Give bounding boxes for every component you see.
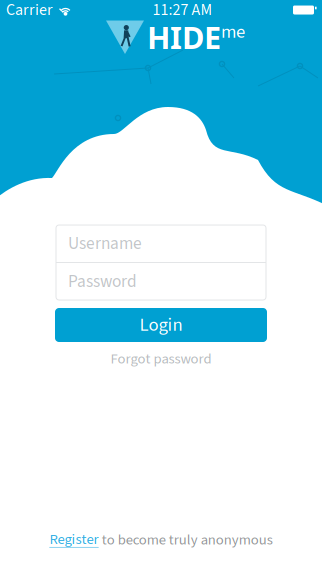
staticText: to become truly anonymous [99,530,273,550]
button[interactable]: Username [56,225,266,262]
staticText: me [221,19,245,45]
button[interactable]: Password [56,263,266,300]
button[interactable]: Register [49,529,99,551]
button[interactable]: Forgot password [55,349,267,369]
staticText: Password [68,269,137,294]
staticText: Register [49,529,98,550]
staticText: Forgot password [110,349,211,369]
staticText: Login [139,312,182,338]
staticText: HIDE [147,16,221,58]
button[interactable]: Login [55,308,267,342]
staticText: Username [68,231,142,256]
staticText: Carrier [6,0,53,21]
staticText: 11:27 AM [152,0,212,21]
